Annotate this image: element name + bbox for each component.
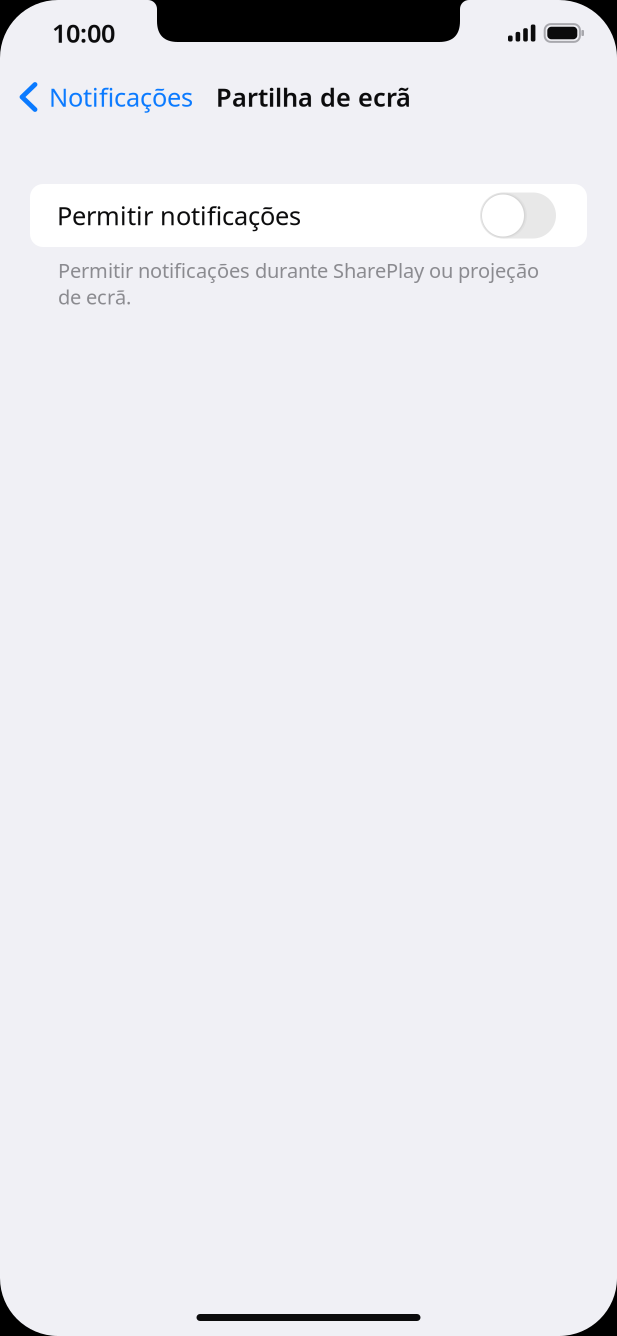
button[interactable]: Notificações	[0, 66, 203, 128]
button[interactable]: Permitir notificações	[30, 184, 587, 247]
staticText: Permitir notificações durante SharePlay …	[58, 257, 539, 310]
staticText: 10:00	[52, 16, 115, 50]
staticText: Permitir notificações	[57, 199, 301, 232]
staticText: Notificações	[49, 80, 193, 114]
button[interactable]: Partilha de ecrã	[203, 66, 420, 128]
button[interactable]: Permitir notificações, desligado	[480, 192, 556, 238]
staticText: Partilha de ecrã	[216, 80, 411, 114]
